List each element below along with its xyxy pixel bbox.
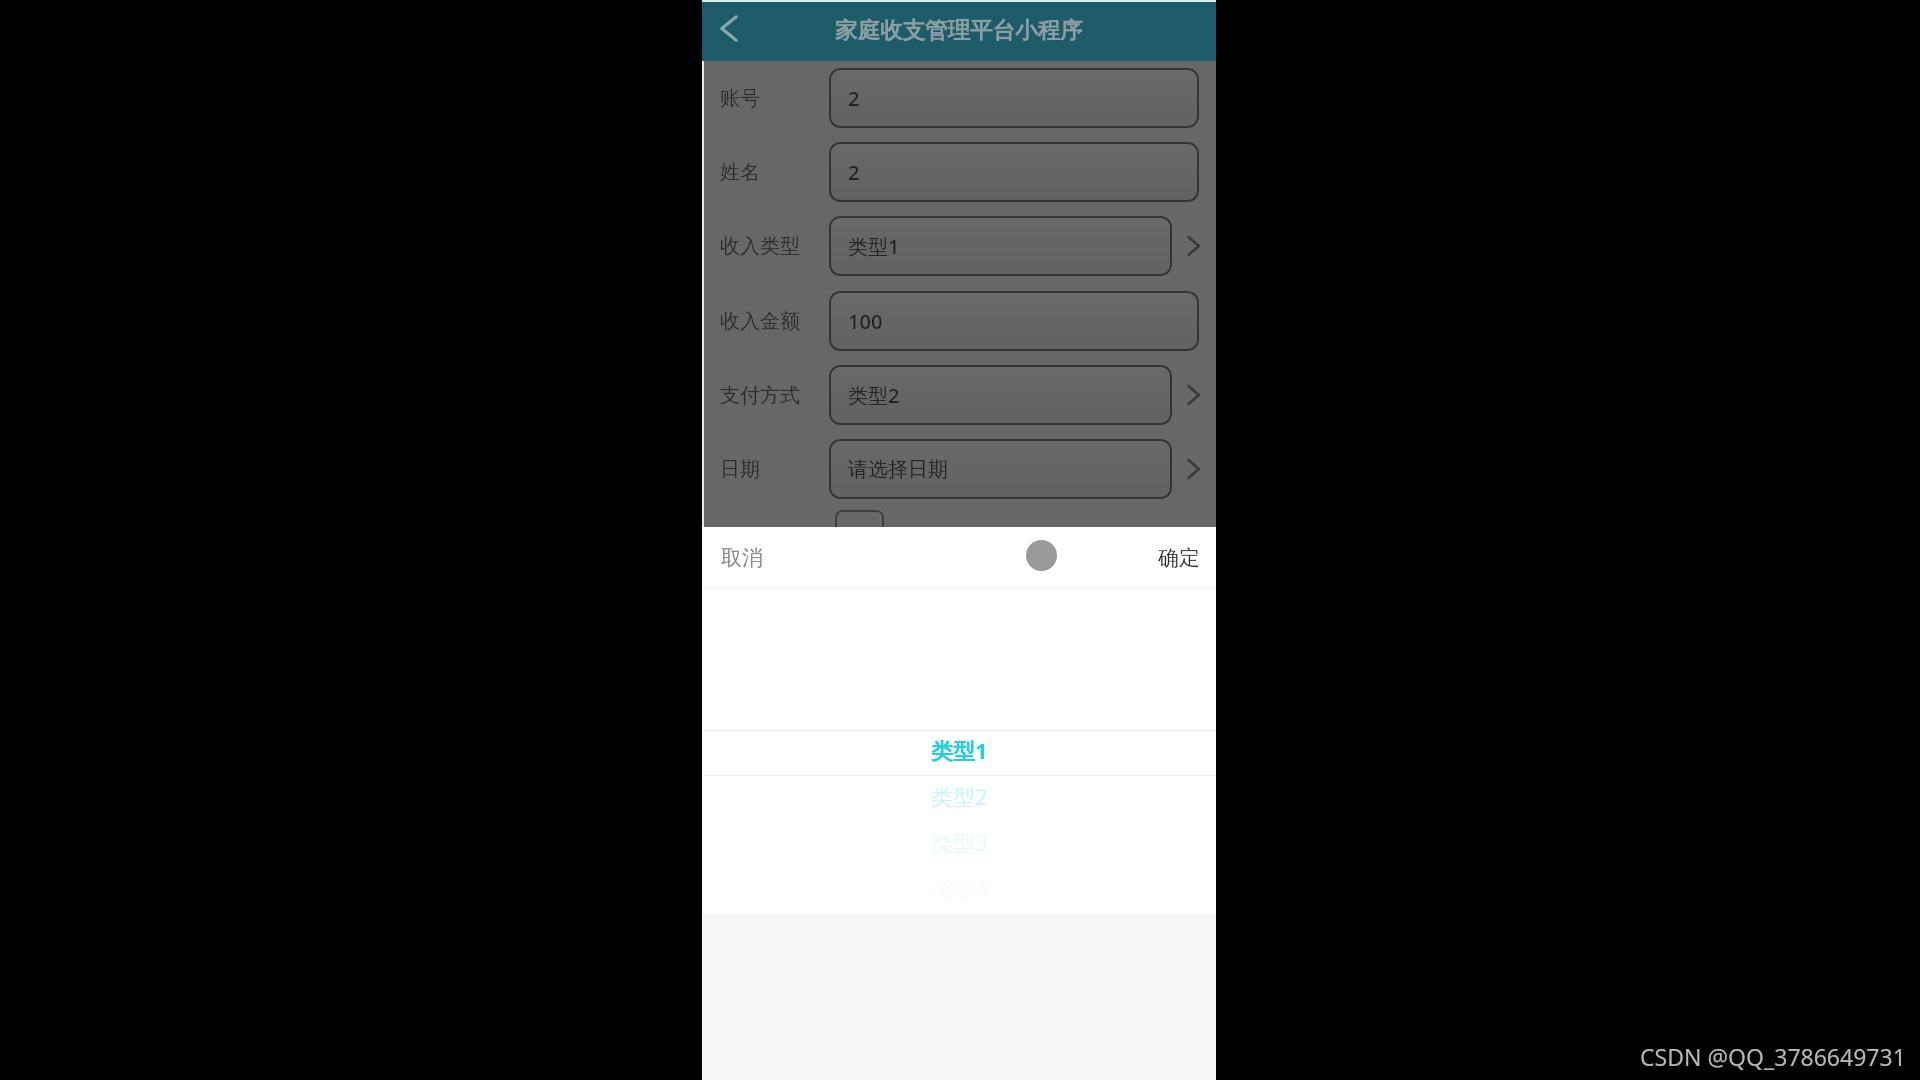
- staticText: 家庭收支管理平台小程序: [835, 16, 1083, 44]
- button[interactable]: Back: [702, 0, 754, 61]
- button[interactable]: 收入金额: [702, 291, 1216, 351]
- staticText: 2: [848, 159, 860, 186]
- button[interactable]: 取消: [702, 527, 787, 588]
- button[interactable]: 账号: [702, 68, 1216, 128]
- button[interactable]: 收入类型: [702, 216, 1216, 276]
- button[interactable]: 类型1: [702, 727, 1216, 773]
- staticText: 日期: [720, 457, 760, 482]
- button[interactable]: 支付方式: [702, 365, 1216, 425]
- staticText: 类型1: [848, 233, 900, 260]
- button[interactable]: 日期: [702, 439, 1216, 499]
- staticText: 2: [848, 85, 860, 112]
- staticText: 请选择日期: [848, 457, 948, 482]
- button[interactable]: 姓名: [702, 142, 1216, 202]
- button[interactable]: 类型2: [702, 773, 1216, 819]
- staticText: 收入金额: [720, 309, 800, 334]
- staticText: 类型3: [931, 827, 988, 857]
- staticText: 100: [848, 308, 883, 335]
- staticText: 确定: [1158, 545, 1200, 571]
- staticText: 支付方式: [720, 383, 800, 408]
- button[interactable]: 确定: [1134, 527, 1216, 588]
- button[interactable]: Loading: [1026, 540, 1057, 571]
- button[interactable]: [835, 510, 884, 552]
- staticText: 类型4: [931, 872, 988, 902]
- staticText: 账号: [720, 86, 760, 111]
- staticText: CSDN @QQ_3786649731: [1640, 1041, 1906, 1072]
- staticText: 类型1: [931, 735, 988, 765]
- staticText: 类型2: [848, 382, 900, 409]
- staticText: 取消: [721, 545, 763, 571]
- staticText: 类型2: [931, 781, 988, 811]
- staticText: 收入类型: [720, 234, 800, 259]
- staticText: 姓名: [720, 160, 760, 185]
